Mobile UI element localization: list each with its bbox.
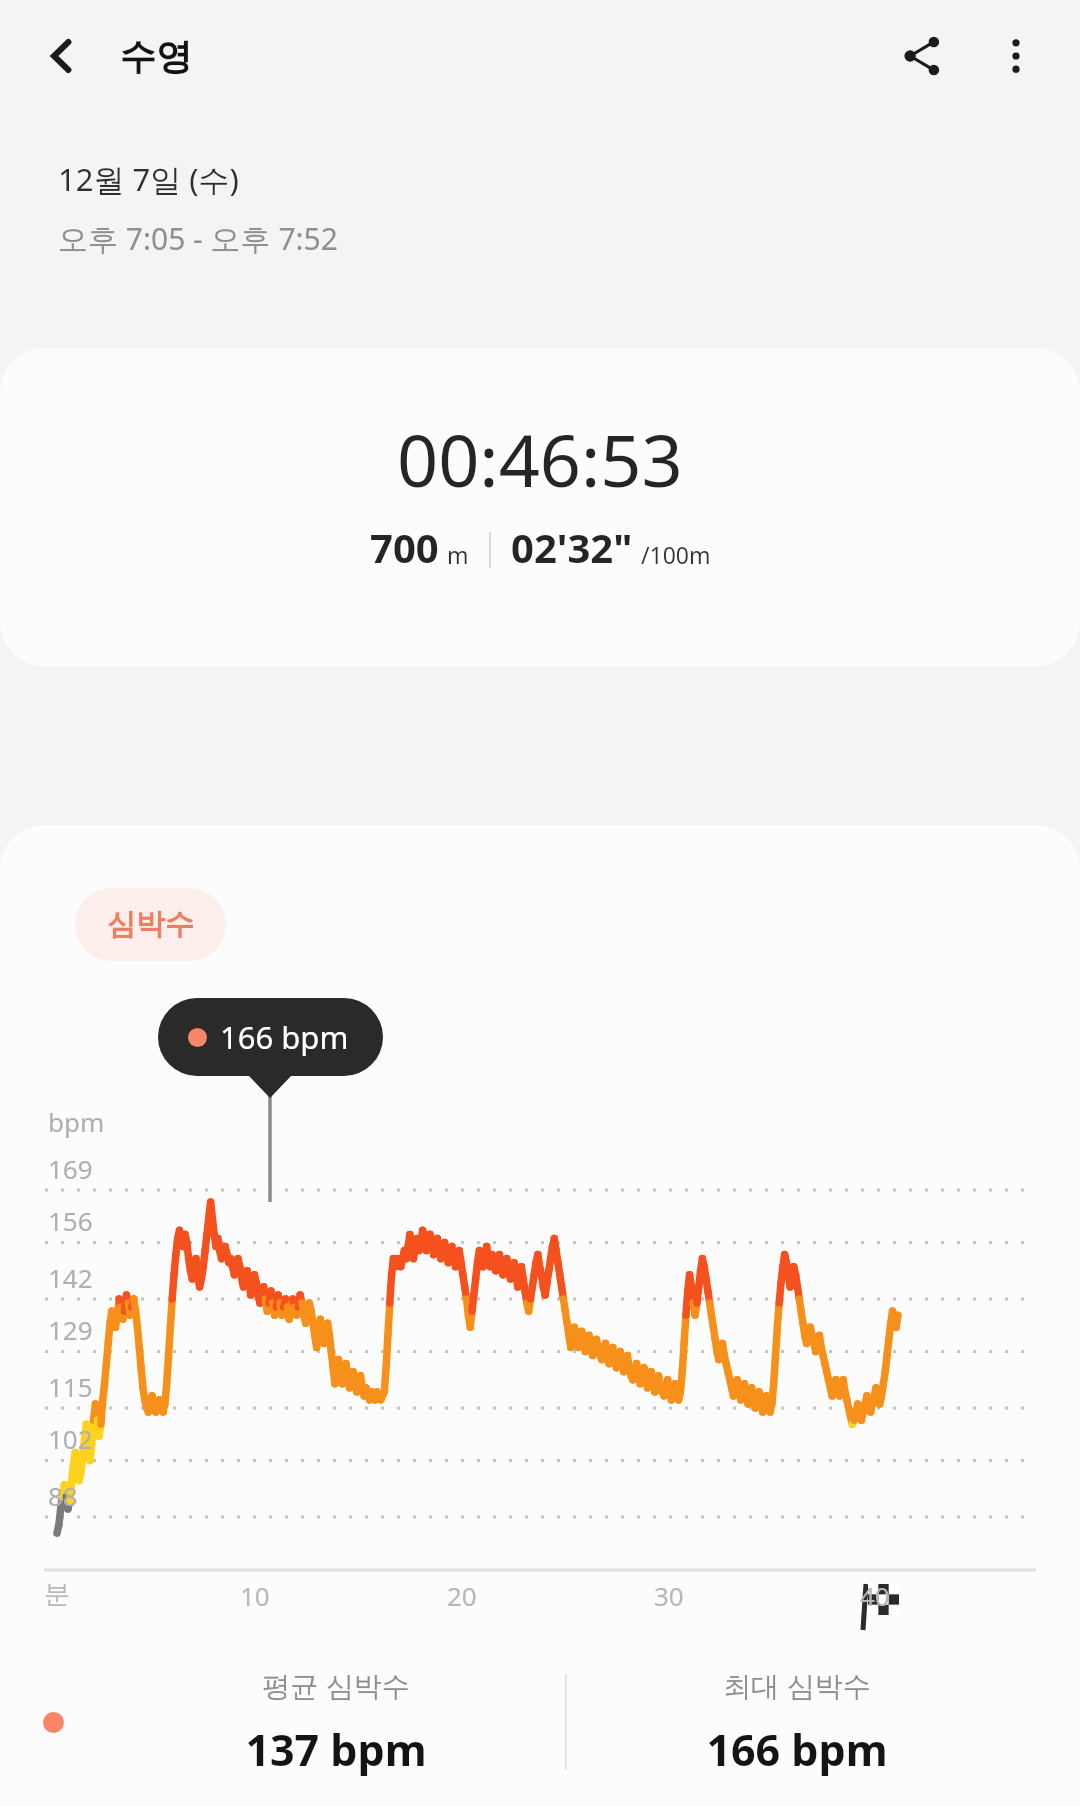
staticText: 02'32" [511, 520, 633, 574]
staticText: 최대 심박수 [723, 1666, 871, 1704]
button[interactable]: 평균 심박수 [106, 1666, 565, 1779]
staticText: m [447, 539, 469, 570]
staticText: 156 [48, 1203, 93, 1238]
button[interactable]: 166 bpm [158, 998, 383, 1076]
staticText: 40 [860, 1578, 890, 1613]
staticText: 30 [654, 1578, 684, 1613]
staticText: 10 [240, 1578, 270, 1613]
staticText: 00:46:53 [397, 410, 683, 508]
staticText: 102 [48, 1421, 93, 1456]
staticText: 129 [48, 1312, 93, 1347]
staticText: /100m [641, 539, 711, 570]
staticText: 166 bpm [706, 1720, 888, 1779]
staticText: 142 [48, 1260, 93, 1295]
button[interactable]: 심박수 [75, 888, 226, 961]
button[interactable]: Share [882, 16, 962, 96]
staticText: 166 bpm [220, 1016, 349, 1058]
staticText: 169 [48, 1151, 93, 1186]
button[interactable]: 00:46:53 [0, 348, 1080, 666]
staticText: 137 bpm [245, 1720, 427, 1779]
staticText: 심박수 [107, 906, 194, 943]
staticText: 88 [48, 1478, 78, 1513]
staticText: bpm [48, 1104, 105, 1139]
button[interactable]: More options [976, 16, 1056, 96]
staticText: 20 [447, 1578, 477, 1613]
staticText: 12월 7일 (수) [58, 158, 239, 200]
staticText: 오후 7:05 - 오후 7:52 [58, 218, 338, 259]
button[interactable]: Back [24, 18, 100, 94]
staticText: 700 [370, 520, 439, 574]
staticText: 115 [48, 1369, 93, 1404]
staticText: 평균 심박수 [262, 1666, 410, 1704]
staticText: 분 [44, 1578, 70, 1611]
button[interactable]: 최대 심박수 [567, 1666, 1026, 1779]
staticText: 수영 [120, 34, 192, 79]
